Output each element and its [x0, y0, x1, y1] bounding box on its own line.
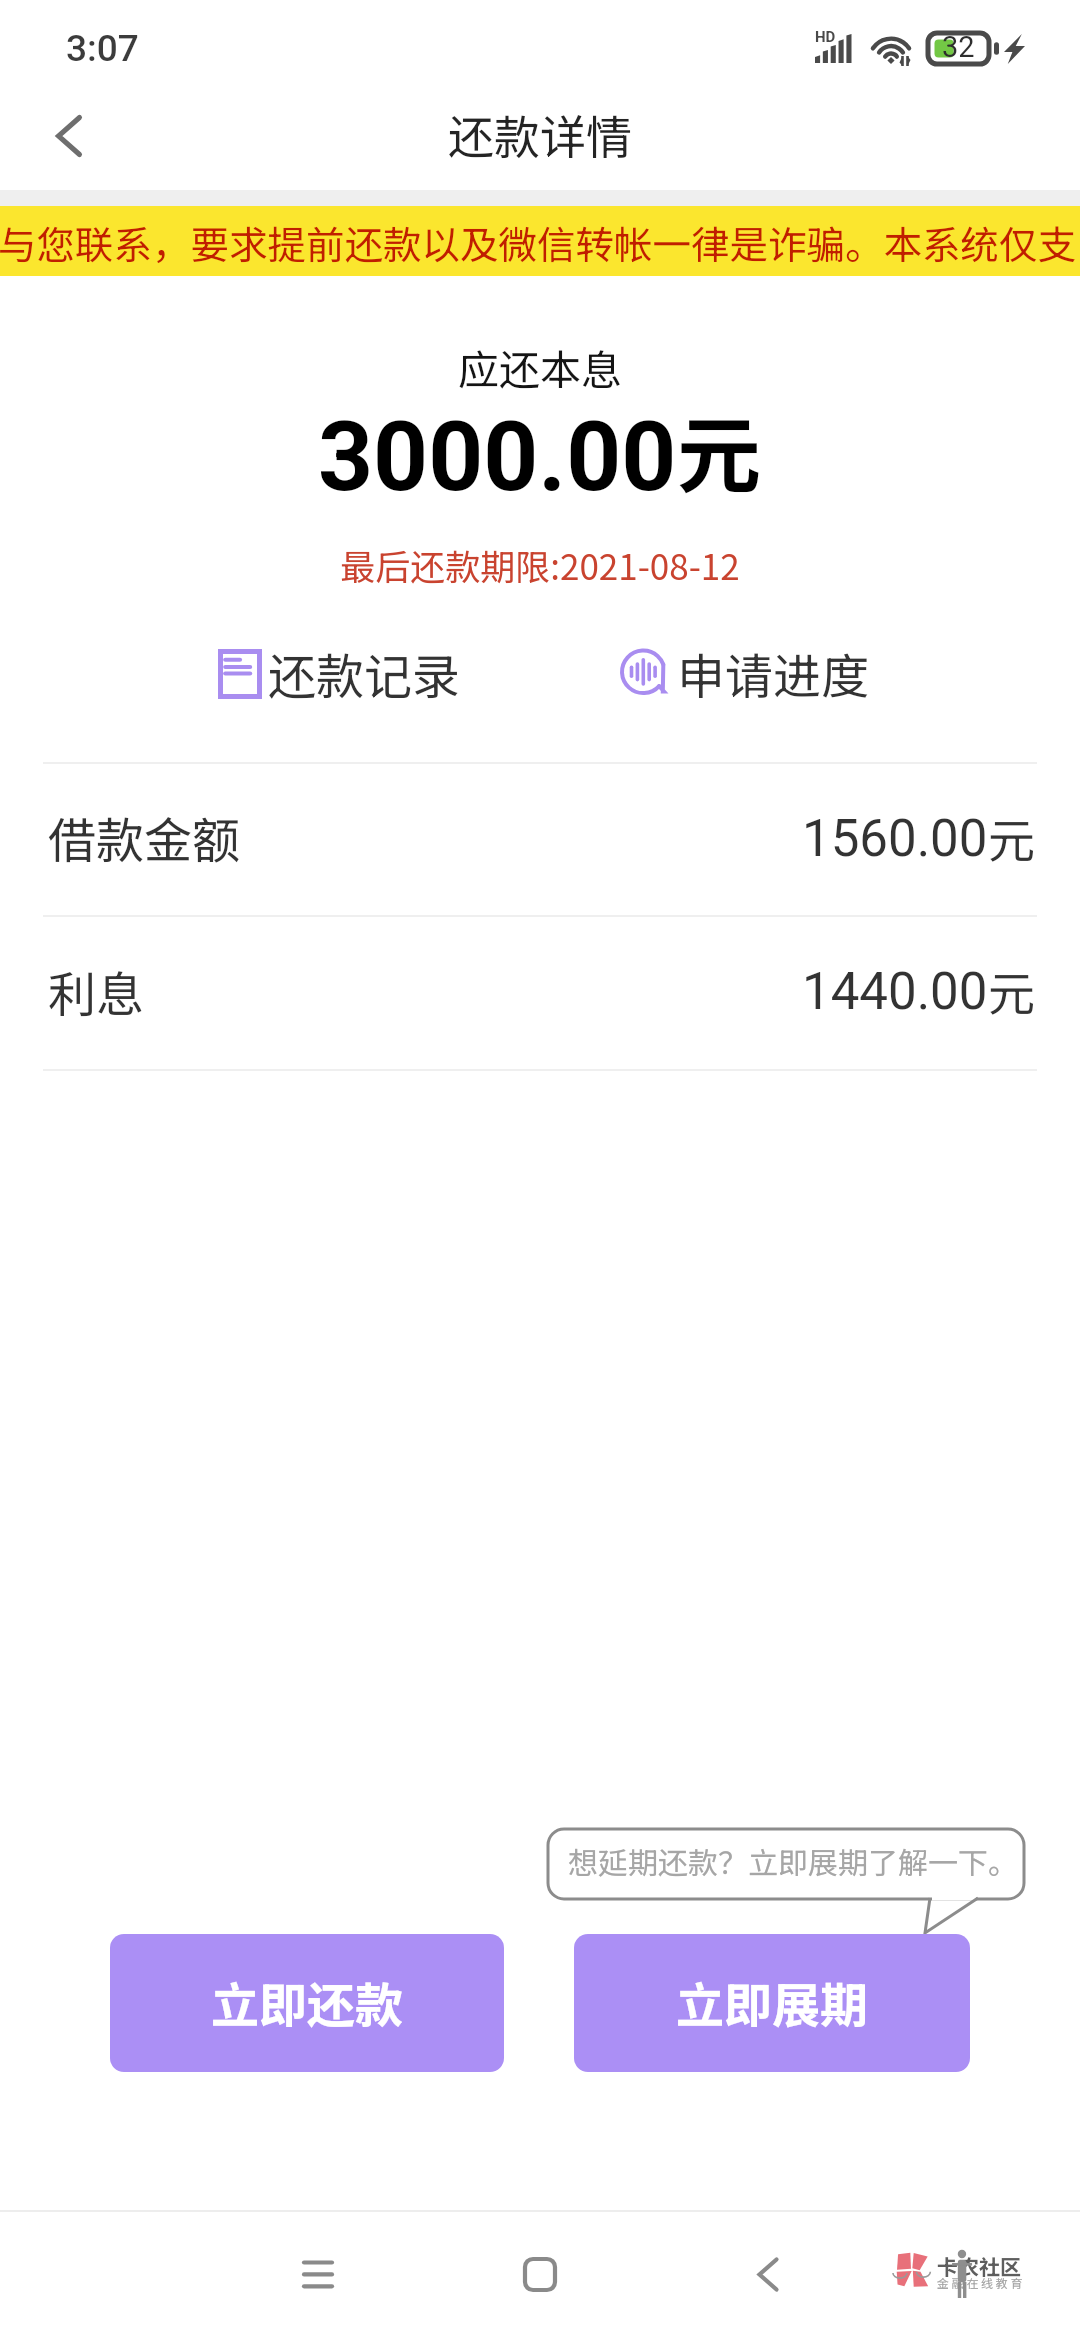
staticText: 利息 [48, 956, 145, 1026]
staticText: 立即展期 [676, 1967, 869, 2037]
staticText: 借款金额 [48, 802, 241, 872]
staticText: 应还本息 [0, 337, 1080, 396]
button[interactable]: Back [728, 2232, 808, 2318]
staticText: 立即还款 [211, 1967, 404, 2037]
staticText: 与您联系，要求提前还款以及微信转帐一律是诈骗。本系统仅支持 [0, 214, 1078, 270]
staticText: 还款详情 [448, 101, 632, 168]
staticText: 元 [677, 389, 762, 511]
staticText: 想延期还款？立即展期了解一下。 [568, 1839, 1018, 1882]
staticText: 还款记录 [268, 638, 461, 704]
staticText: 卡农社区 [937, 2251, 1021, 2281]
staticText: HD [815, 28, 836, 46]
staticText: 元 [988, 956, 1035, 1024]
staticText: 元 [988, 803, 1035, 871]
button[interactable]: 立即还款 [110, 1934, 504, 2072]
button[interactable]: 与您联系，要求提前还款以及微信转帐一律是诈骗。本系统仅支持 [0, 206, 1080, 276]
button[interactable]: Recents [277, 2232, 357, 2318]
button[interactable]: 想延期还款？立即展期了解一下。 [548, 1829, 1024, 1899]
staticText: 1560.00 [802, 809, 988, 869]
staticText: 3000.00 [318, 401, 677, 514]
button[interactable]: 还款记录 [210, 640, 468, 706]
staticText: 1440.00 [802, 962, 988, 1022]
staticText: 最后还款期限:2021-08-12 [0, 539, 1080, 590]
staticText: 32 [942, 30, 975, 64]
button[interactable]: 返回 [18, 85, 120, 187]
staticText: 金 融 在 线 教 育 [937, 2274, 1023, 2291]
staticText: 3:07 [66, 27, 139, 70]
button[interactable]: 借款金额 [0, 762, 1080, 915]
button[interactable]: 立即展期 [574, 1934, 970, 2072]
button[interactable]: 利息 [0, 915, 1080, 1069]
staticText: 申请进度 [677, 638, 870, 704]
button[interactable]: Home [500, 2232, 580, 2318]
button[interactable]: 申请进度 [615, 640, 873, 706]
